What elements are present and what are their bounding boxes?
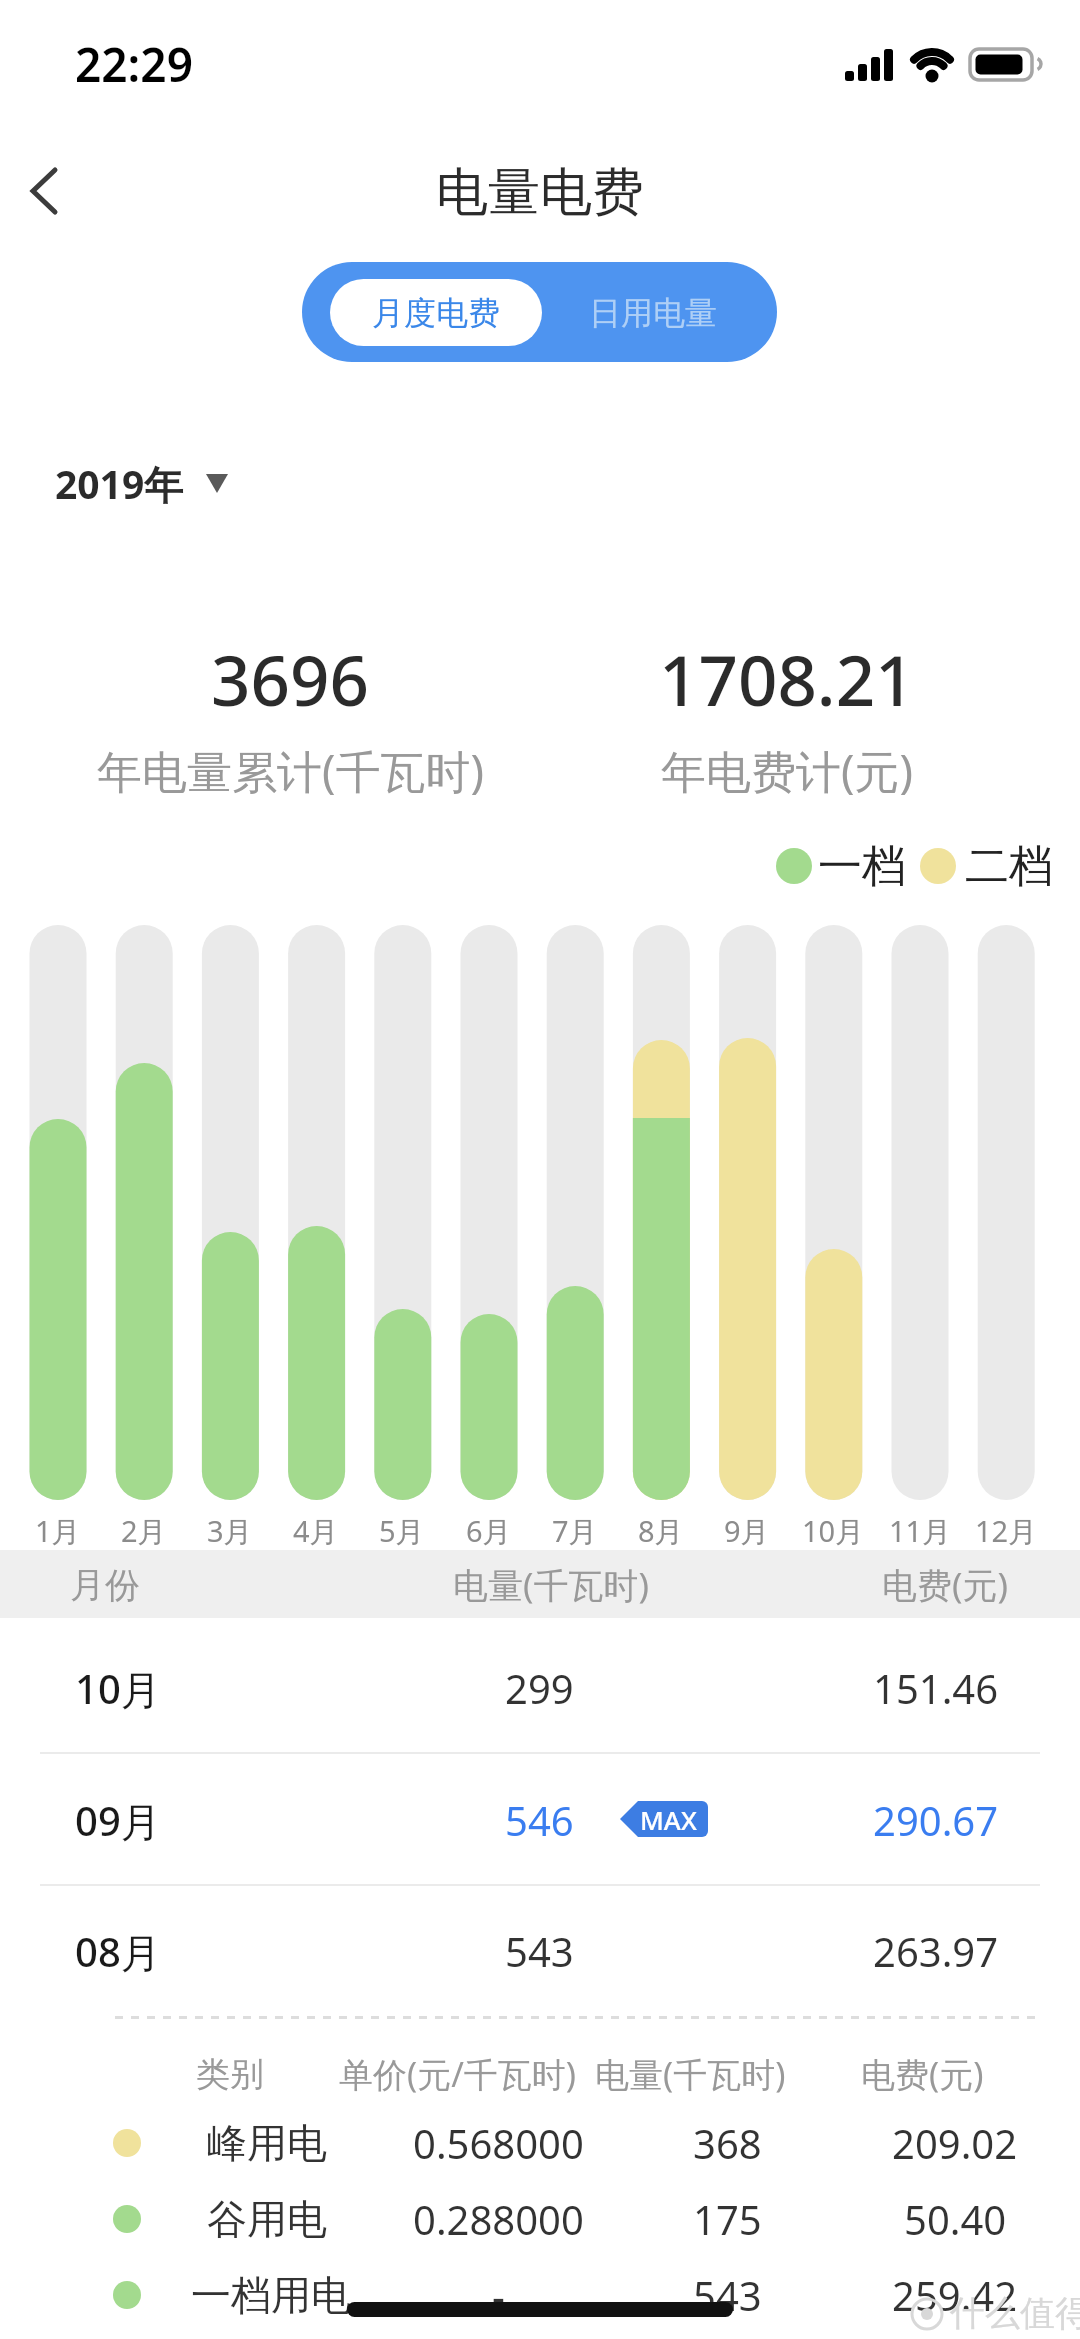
staticText: 单价(元/千瓦时) — [339, 2051, 577, 2097]
staticText: 543 — [505, 1924, 574, 1978]
staticText: 50.40 — [904, 2192, 1007, 2246]
staticText: MAX — [640, 1802, 697, 1837]
button[interactable]: 2019年 — [40, 450, 250, 516]
staticText: 10月 — [802, 1511, 865, 1551]
staticText: 什么值得买 — [950, 2291, 1080, 2335]
staticText: 月份 — [70, 1563, 140, 1607]
staticText: 546 — [505, 1793, 574, 1847]
button[interactable]: 日用电量 — [547, 279, 759, 346]
staticText: 电费(元) — [861, 2051, 984, 2097]
staticText: 谷用电 — [207, 2194, 327, 2244]
staticText: 4月 — [293, 1511, 339, 1551]
staticText: 3月 — [207, 1511, 253, 1551]
staticText: 电量(千瓦时) — [595, 2051, 786, 2097]
staticText: 08月 — [75, 1924, 161, 1979]
staticText: 11月 — [889, 1511, 952, 1551]
staticText: 1708.21 — [659, 632, 915, 712]
staticText: 9月 — [724, 1511, 770, 1551]
staticText: 电量(千瓦时) — [453, 1561, 650, 1609]
staticText: 09月 — [75, 1793, 161, 1848]
staticText: 3696 — [211, 632, 369, 712]
staticText: 年电费计(元) — [661, 740, 914, 801]
staticText: 2019年 — [55, 457, 184, 510]
staticText: 5月 — [379, 1511, 425, 1551]
staticText: 12月 — [975, 1511, 1038, 1551]
button[interactable] — [0, 1885, 1080, 2017]
staticText: 543 — [693, 2268, 762, 2322]
staticText: 263.97 — [873, 1924, 999, 1978]
staticText: 368 — [693, 2116, 762, 2170]
staticText: 290.67 — [873, 1793, 999, 1847]
staticText: 日用电量 — [589, 293, 717, 333]
staticText: 一档用电 — [191, 2270, 351, 2320]
staticText: 10月 — [75, 1661, 161, 1716]
staticText: 0.568000 — [413, 2116, 584, 2170]
staticText: 一档 — [818, 839, 906, 894]
staticText: 二档 — [965, 839, 1053, 894]
staticText: 0.288000 — [413, 2192, 584, 2246]
staticText: 月度电费 — [372, 293, 500, 333]
staticText: 299 — [505, 1661, 574, 1715]
staticText: 8月 — [638, 1511, 684, 1551]
staticText: 电量电费 — [436, 160, 644, 226]
staticText: 259.42 — [892, 2268, 1018, 2322]
staticText: 7月 — [552, 1511, 598, 1551]
staticText: 峰用电 — [207, 2118, 327, 2168]
staticText: - — [492, 2268, 505, 2322]
button[interactable]: 月度电费 — [330, 279, 542, 346]
button[interactable] — [0, 1622, 1080, 1754]
staticText: 年电量累计(千瓦时) — [97, 740, 485, 801]
staticText: 1月 — [35, 1511, 81, 1551]
staticText: 类别 — [196, 2053, 264, 2096]
staticText: 151.46 — [873, 1661, 999, 1715]
staticText: 209.02 — [892, 2116, 1018, 2170]
staticText: 175 — [693, 2192, 762, 2246]
staticText: 电费(元) — [882, 1561, 1009, 1609]
button[interactable] — [20, 165, 70, 220]
staticText: 2月 — [121, 1511, 167, 1551]
staticText: 6月 — [466, 1511, 512, 1551]
staticText: 22:29 — [75, 33, 193, 96]
button[interactable] — [0, 1754, 1080, 1886]
